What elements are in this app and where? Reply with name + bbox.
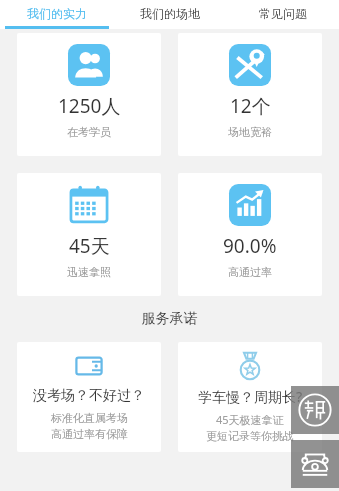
staticText: 45天 bbox=[69, 233, 110, 259]
button[interactable]: 12个 bbox=[178, 33, 322, 156]
staticText: 我们的实力 bbox=[27, 6, 87, 21]
staticText: 学车慢？周期长? bbox=[198, 387, 303, 406]
button[interactable]: 1250人 bbox=[17, 33, 161, 156]
staticText: 45天极速拿证 bbox=[216, 412, 284, 427]
staticText: 90.0% bbox=[223, 233, 277, 259]
staticText: 在考学员 bbox=[67, 125, 111, 139]
staticText: 高通过率有保障 bbox=[51, 427, 128, 441]
staticText: 更短记录等你挑战 bbox=[206, 429, 294, 443]
button[interactable]: 学车慢？周期长? bbox=[178, 342, 322, 452]
staticText: 标准化直属考场 bbox=[51, 411, 128, 425]
button[interactable]: 90.0% bbox=[178, 173, 322, 296]
staticText: 没考场？不好过？ bbox=[33, 387, 145, 405]
button[interactable]: 我们的场地 bbox=[113, 0, 226, 26]
button[interactable]: 没考场？不好过？ bbox=[17, 342, 161, 452]
button[interactable]: Book appointment bbox=[291, 386, 339, 434]
button[interactable]: Call bbox=[291, 440, 339, 488]
button[interactable]: 常见问题 bbox=[226, 0, 339, 26]
staticText: 迅速拿照 bbox=[67, 265, 111, 279]
staticText: 高通过率 bbox=[228, 265, 272, 279]
staticText: 场地宽裕 bbox=[228, 125, 272, 139]
staticText: 我们的场地 bbox=[140, 6, 200, 21]
button[interactable]: 我们的实力 bbox=[0, 0, 113, 26]
staticText: 12个 bbox=[230, 93, 271, 119]
staticText: 常见问题 bbox=[259, 6, 307, 21]
button[interactable]: 45天 bbox=[17, 173, 161, 296]
staticText: 服务承诺 bbox=[0, 310, 339, 328]
staticText: 1250人 bbox=[58, 93, 121, 119]
